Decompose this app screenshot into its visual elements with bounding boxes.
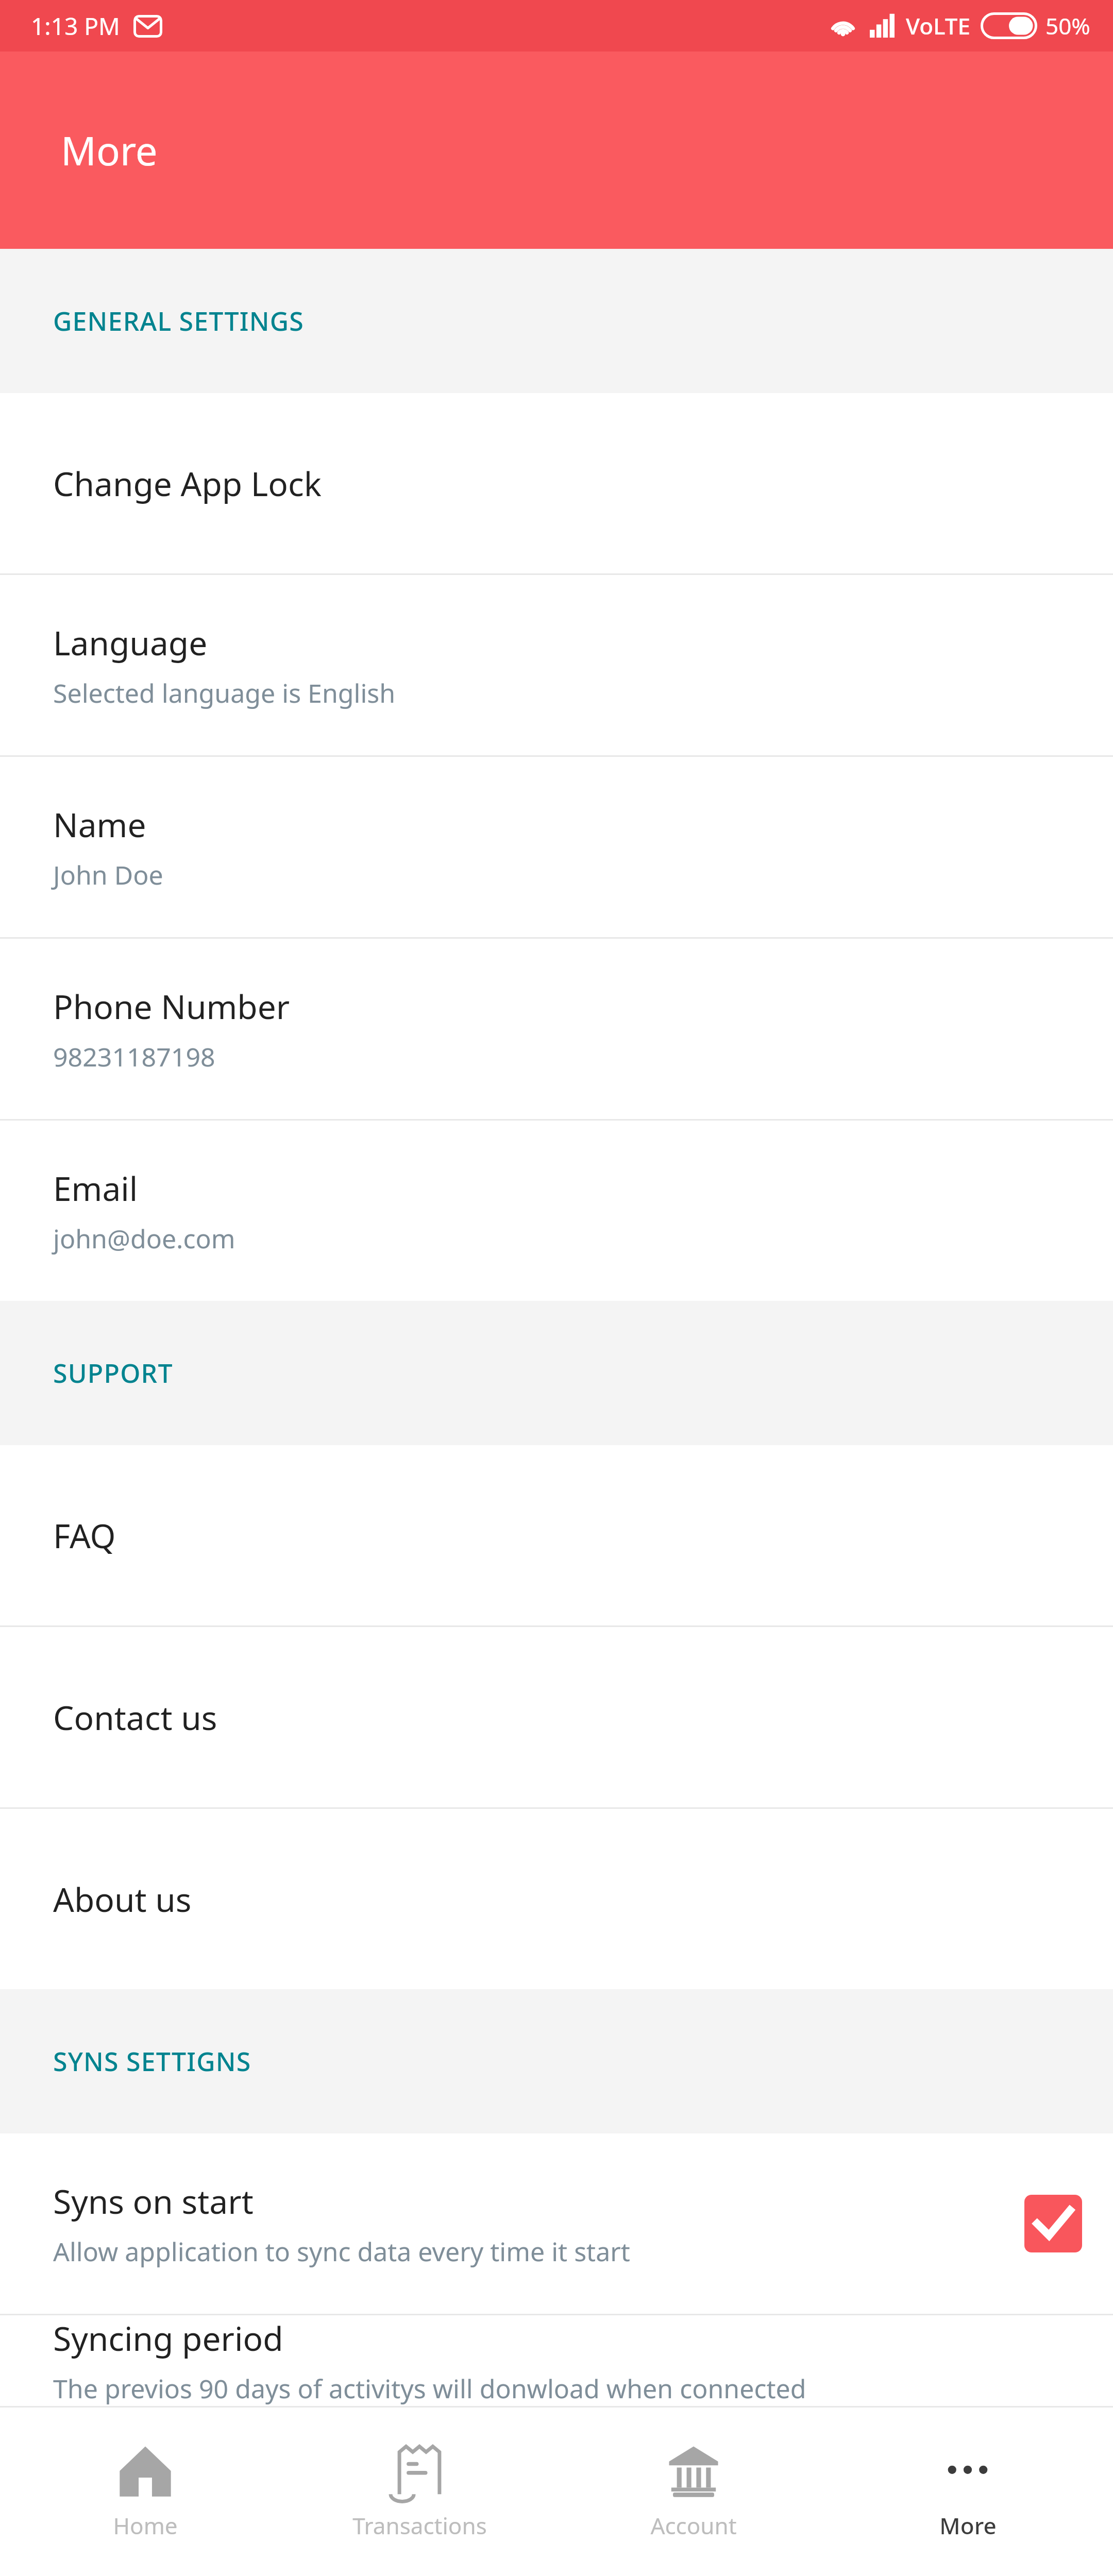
staticText: Change App Lock [53, 461, 322, 506]
button[interactable]: Language [0, 575, 1113, 755]
button[interactable]: Syns on start [0, 2133, 1113, 2314]
staticText: FAQ [53, 1513, 116, 1558]
staticText: About us [53, 1877, 192, 1922]
button[interactable]: Home [16, 2433, 274, 2551]
button[interactable]: FAQ [0, 1445, 1113, 1625]
button[interactable]: Email [0, 1121, 1113, 1301]
staticText: Phone Number [53, 984, 290, 1029]
staticText: Selected language is English [53, 675, 396, 710]
button[interactable]: About us [0, 1809, 1113, 1989]
button[interactable]: Syncing period [0, 2315, 1113, 2406]
staticText: SYNS SETTIGNS [53, 2044, 251, 2079]
staticText: GENERAL SETTINGS [53, 303, 304, 338]
staticText: Account [650, 2510, 737, 2541]
staticText: Email [53, 1166, 138, 1211]
button[interactable]: Phone Number [0, 939, 1113, 1119]
staticText: john@doe.com [53, 1221, 235, 1256]
staticText: 98231187198 [53, 1039, 215, 1074]
button[interactable]: Transactions [291, 2433, 548, 2551]
staticText: Syncing period [53, 2316, 283, 2361]
button[interactable]: Name [0, 757, 1113, 937]
staticText: 50% [1045, 10, 1090, 41]
staticText: VoLTE [906, 10, 970, 41]
staticText: Transactions [352, 2510, 487, 2541]
staticText: The previos 90 days of activitys will do… [53, 2371, 806, 2406]
button[interactable]: Account [565, 2433, 822, 2551]
staticText: Home [113, 2510, 178, 2541]
button[interactable]: Change App Lock [0, 393, 1113, 573]
staticText: More [939, 2510, 997, 2541]
staticText: John Doe [53, 857, 163, 892]
staticText: Name [53, 802, 146, 847]
button[interactable]: Sync on start enabled [1024, 2195, 1082, 2252]
button[interactable]: More [839, 2433, 1097, 2551]
staticText: Syns on start [53, 2179, 254, 2224]
staticText: 1:13 PM [31, 10, 120, 42]
staticText: SUPPORT [53, 1355, 173, 1391]
staticText: Language [53, 620, 208, 665]
button[interactable]: Contact us [0, 1627, 1113, 1807]
staticText: More [61, 124, 158, 177]
staticText: Allow application to sync data every tim… [53, 2234, 630, 2269]
staticText: Contact us [53, 1695, 217, 1740]
